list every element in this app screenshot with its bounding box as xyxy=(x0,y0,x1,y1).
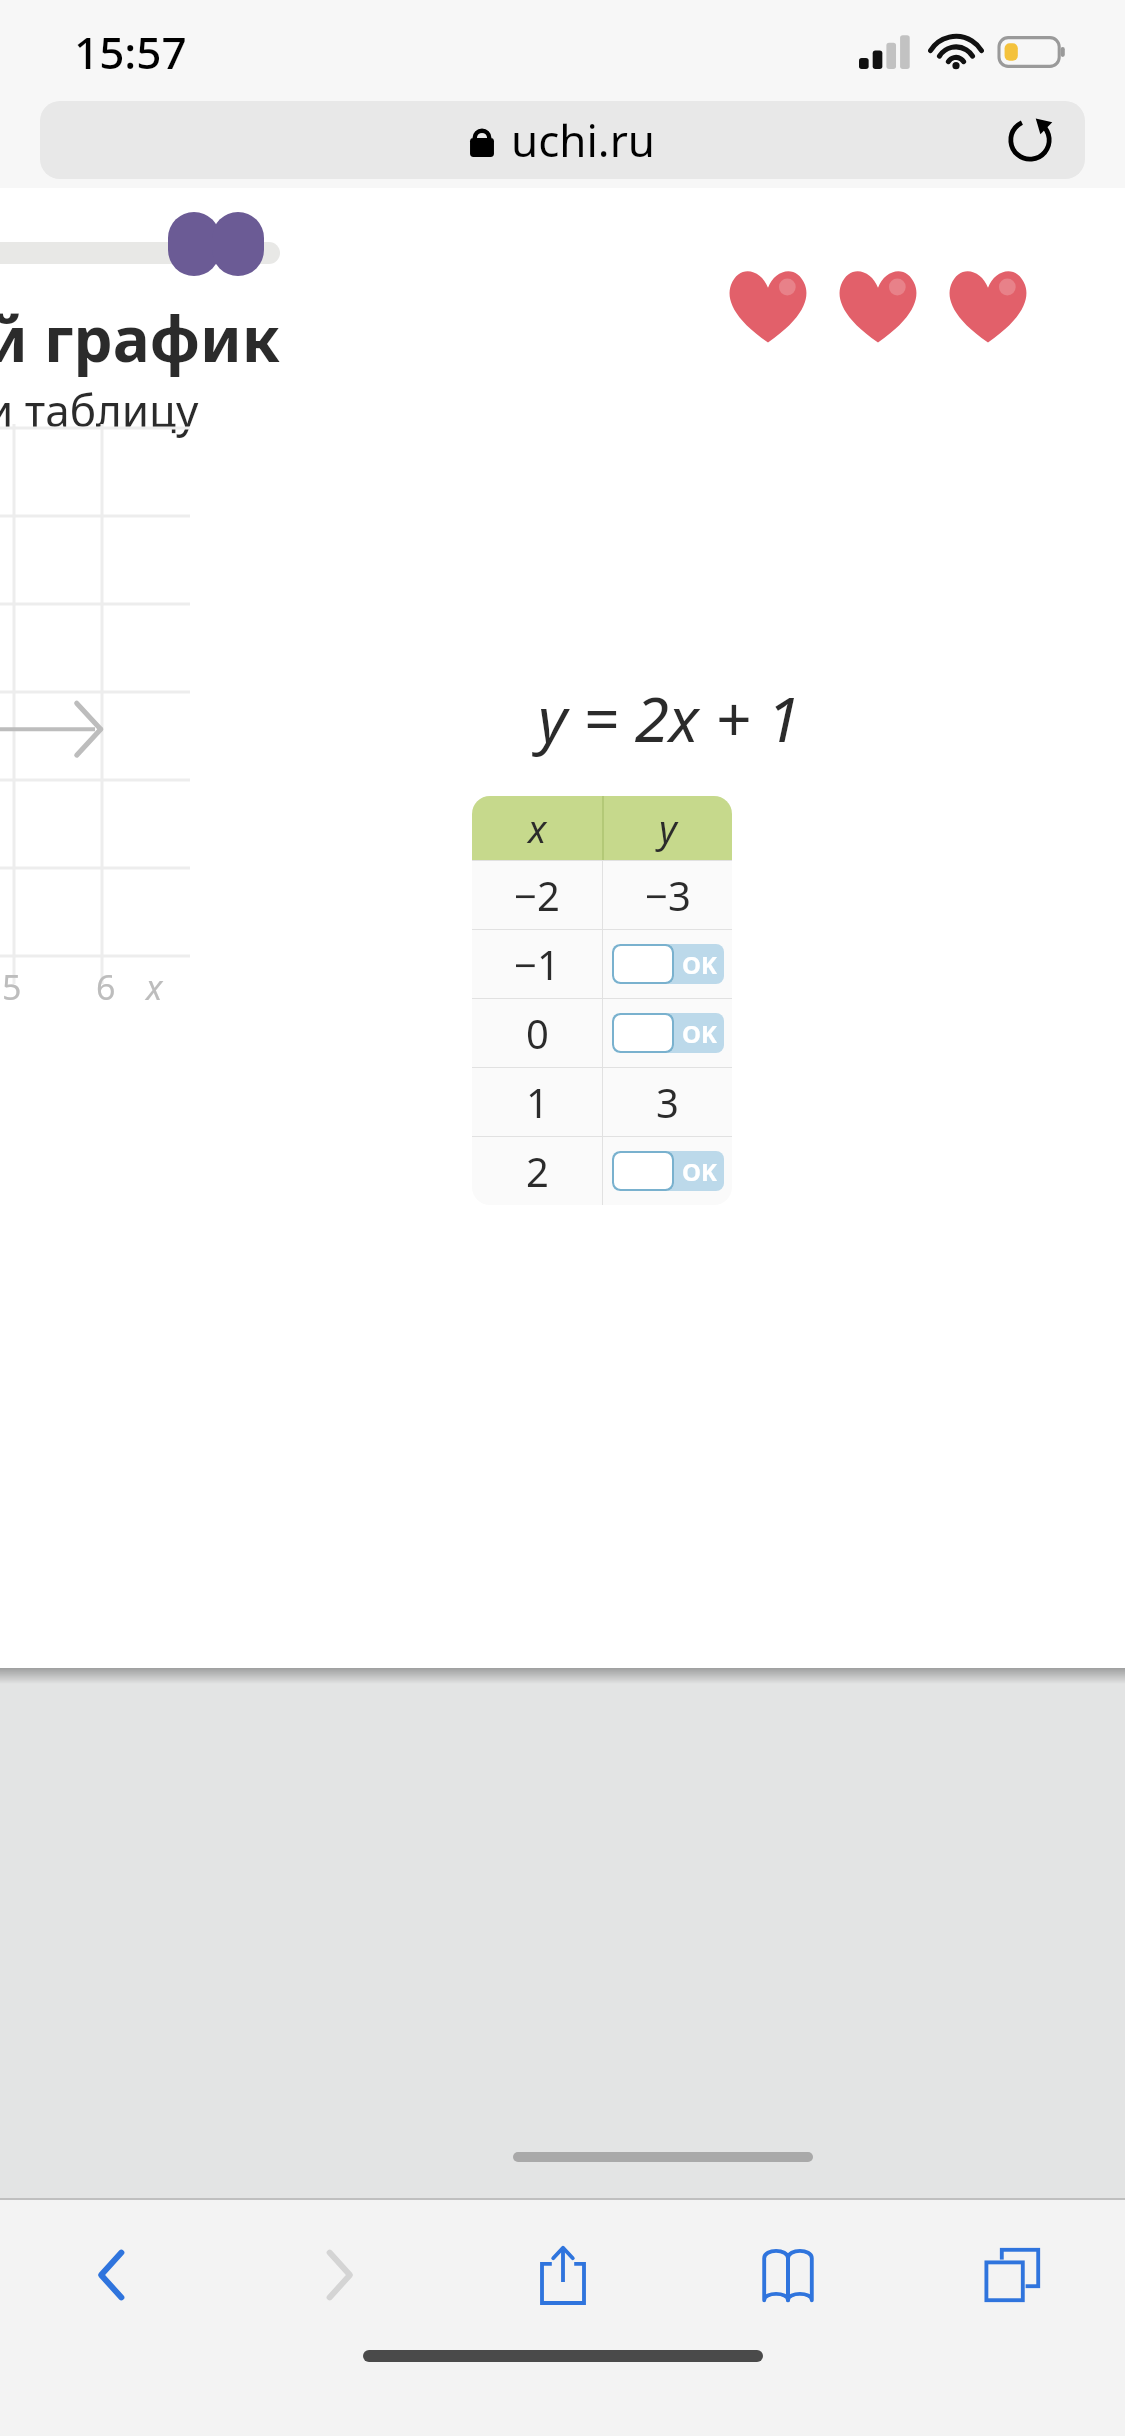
staticText: 0 xyxy=(526,1006,549,1060)
staticText: 3 xyxy=(656,1075,679,1129)
staticText: OK xyxy=(682,1017,717,1050)
staticText: −1 xyxy=(514,937,560,991)
staticText: y xyxy=(659,802,677,854)
button[interactable]: uchi.ru xyxy=(40,101,1085,179)
button[interactable]: OK xyxy=(612,1151,724,1191)
staticText: x xyxy=(146,964,163,1010)
button[interactable]: OK xyxy=(612,944,724,984)
staticText: 2 xyxy=(526,1144,549,1198)
staticText: 1 xyxy=(526,1075,549,1129)
staticText: 5 xyxy=(2,964,22,1010)
staticText: OK xyxy=(682,948,717,981)
button[interactable]: Bookmarks xyxy=(675,2200,900,2350)
button[interactable]: Reload xyxy=(995,105,1065,175)
staticText: uchi.ru xyxy=(511,110,656,170)
button[interactable]: Forward xyxy=(225,2200,450,2350)
staticText: 15:57 xyxy=(74,22,187,82)
button[interactable]: Share xyxy=(450,2200,675,2350)
staticText: OK xyxy=(682,1155,717,1188)
staticText: −2 xyxy=(514,868,560,922)
staticText: x xyxy=(528,802,547,854)
button[interactable]: Tabs xyxy=(900,2200,1125,2350)
staticText: −3 xyxy=(645,868,691,922)
staticText: y = 2x + 1 xyxy=(538,676,801,760)
staticText: 6 xyxy=(96,964,116,1010)
staticText: и таблицу xyxy=(0,380,199,440)
button[interactable]: Back xyxy=(0,2200,225,2350)
staticText: й график xyxy=(0,296,280,380)
button[interactable]: OK xyxy=(612,1013,724,1053)
